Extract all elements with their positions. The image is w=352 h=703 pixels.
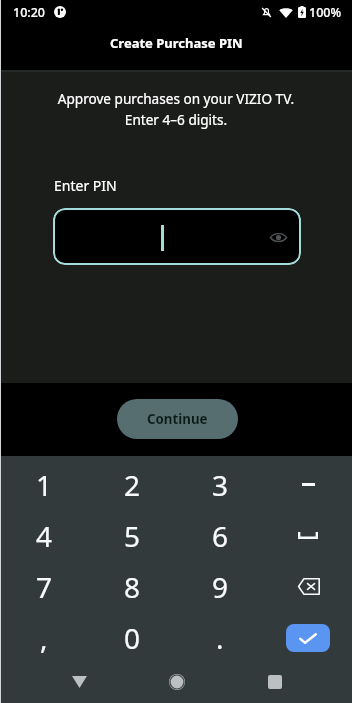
staticText: 0 (124, 619, 141, 657)
button[interactable]: Back (55, 660, 103, 703)
button[interactable]: Backspace (264, 561, 352, 612)
button[interactable]: 6 (176, 510, 264, 561)
staticText: 10:20 (13, 4, 46, 21)
button[interactable]: Show PIN (266, 225, 290, 249)
staticText: 9 (212, 568, 229, 606)
button[interactable]: , (0, 612, 88, 663)
staticText: 100% (309, 4, 342, 21)
button[interactable]: Show PIN (53, 208, 301, 265)
button[interactable]: Continue (117, 399, 238, 439)
button[interactable]: 4 (0, 510, 88, 561)
button[interactable]: Enter (264, 612, 352, 663)
staticText: 5 (124, 517, 141, 555)
staticText: Enter PIN (54, 176, 117, 195)
button[interactable]: 3 (176, 459, 264, 510)
staticText: 7 (36, 568, 53, 606)
staticText: Create Purchase PIN (110, 34, 243, 52)
button[interactable]: Dash (264, 459, 352, 510)
staticText: 6 (212, 517, 229, 555)
staticText: 3 (212, 466, 229, 504)
button[interactable]: 1 (0, 459, 88, 510)
button[interactable]: 8 (88, 561, 176, 612)
staticText: Continue (147, 410, 208, 428)
button[interactable]: Recents (251, 660, 299, 703)
staticText: 1 (36, 466, 53, 504)
staticText: 8 (124, 568, 141, 606)
staticText: 2 (124, 466, 141, 504)
staticText: . (216, 619, 224, 657)
staticText: Approve purchases on your VIZIO TV. Ente… (18, 89, 334, 129)
staticText: 4 (36, 517, 53, 555)
button[interactable]: . (176, 612, 264, 663)
button[interactable]: Space (264, 510, 352, 561)
button[interactable]: Home (153, 660, 201, 703)
button[interactable]: 5 (88, 510, 176, 561)
button[interactable]: 0 (88, 612, 176, 663)
staticText: , (40, 619, 48, 657)
button[interactable]: 7 (0, 561, 88, 612)
button[interactable]: 9 (176, 561, 264, 612)
button[interactable]: 2 (88, 459, 176, 510)
